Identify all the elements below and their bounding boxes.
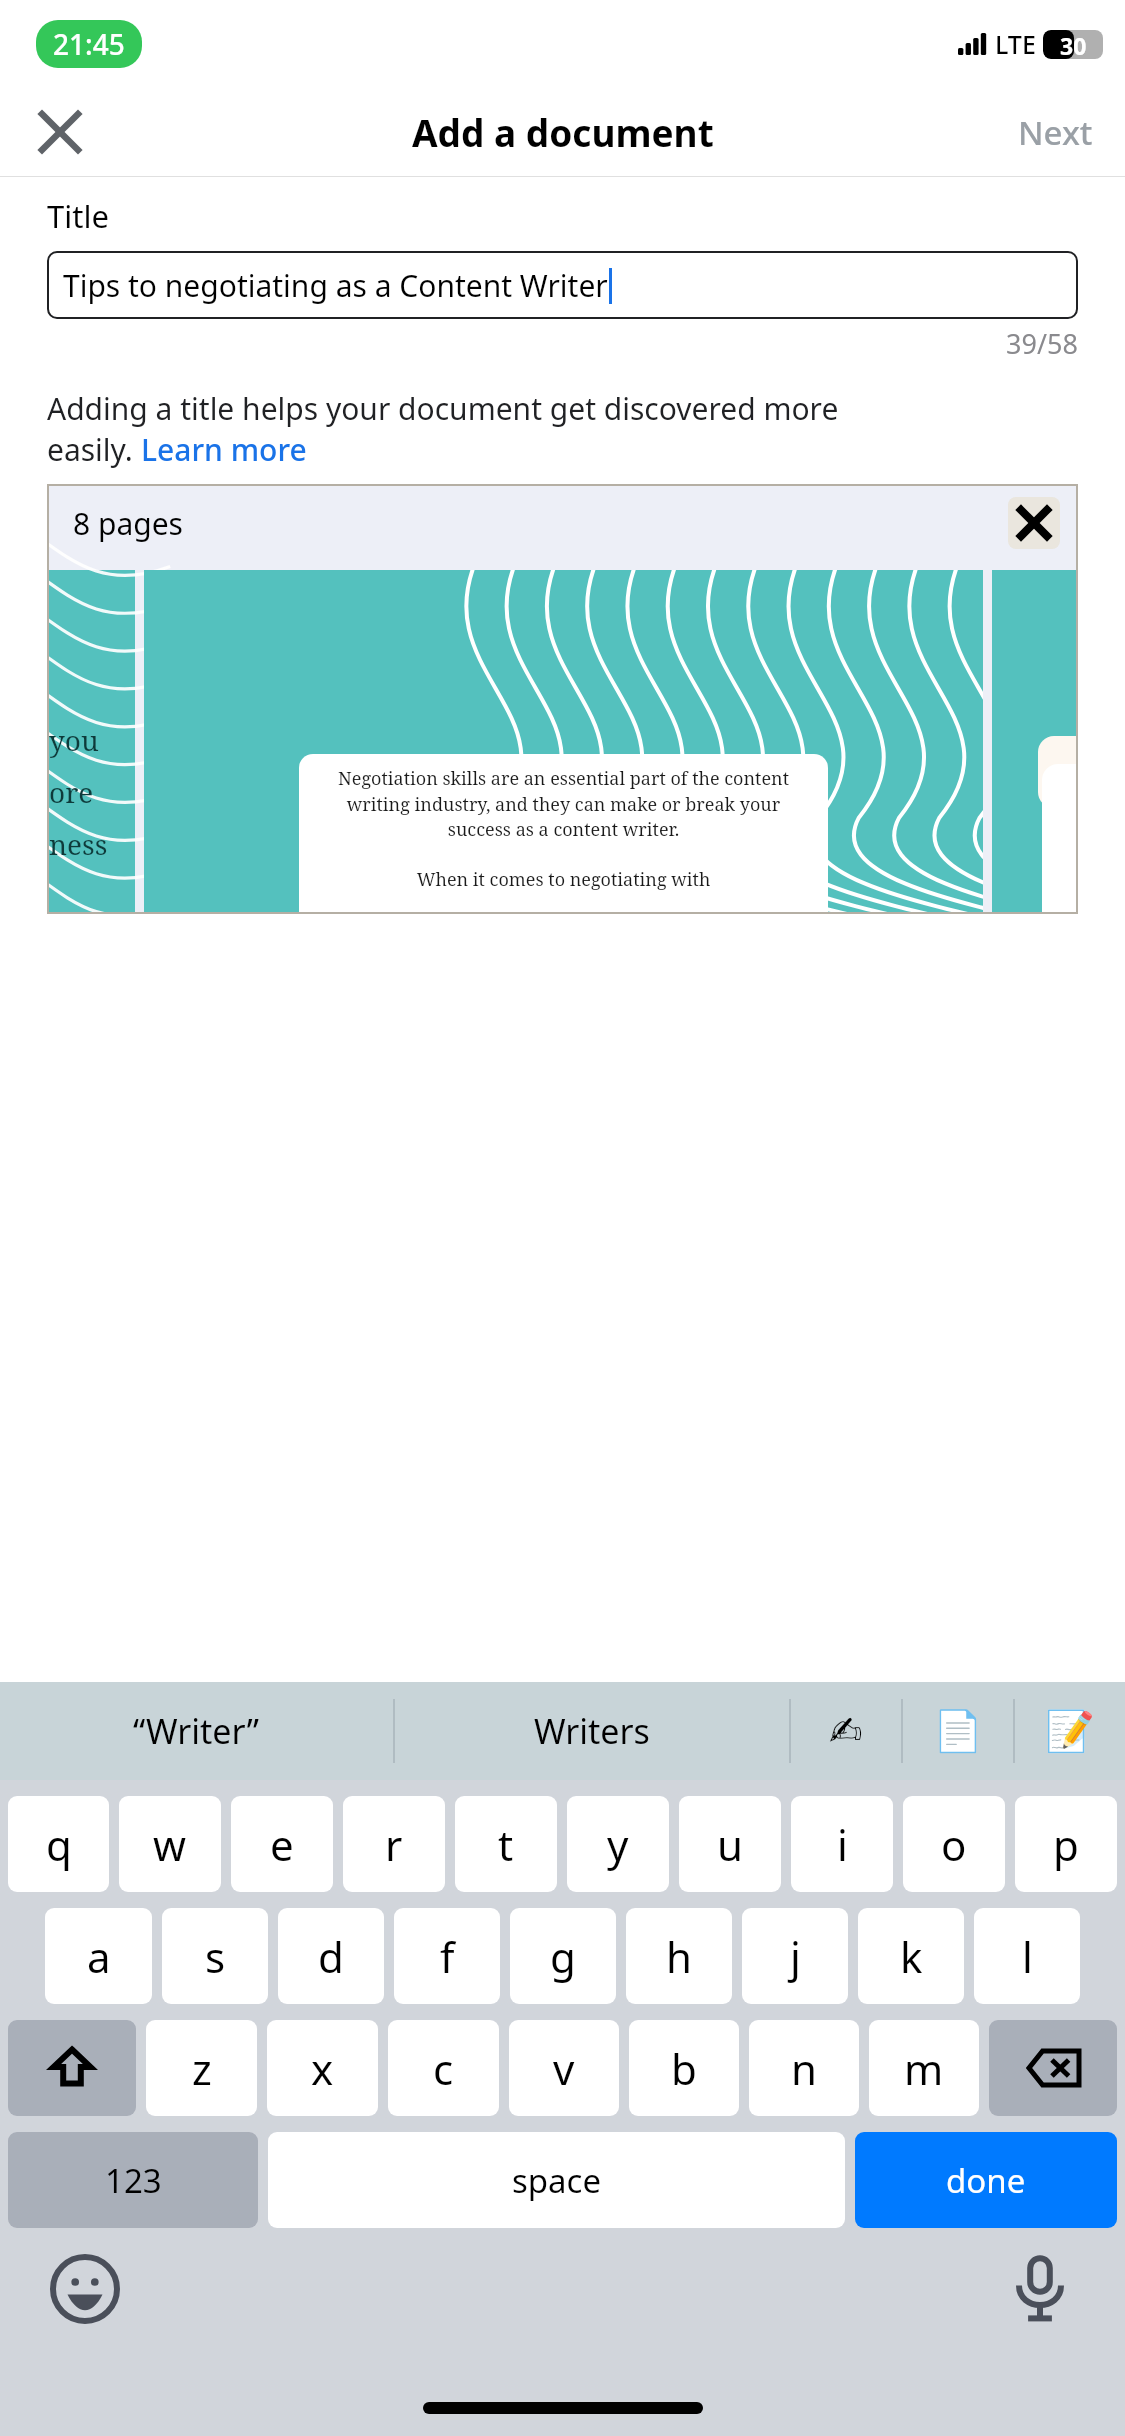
staticText: v <box>553 2040 575 2097</box>
staticText: ness <box>49 825 108 863</box>
button[interactable]: p <box>1015 1796 1117 1892</box>
staticText: h <box>666 1928 692 1985</box>
staticText: 21:45 <box>53 25 125 63</box>
staticText: k <box>900 1928 923 1985</box>
staticText: ✍️ <box>829 1708 863 1755</box>
staticText: s <box>205 1928 226 1985</box>
button[interactable]: Learn more <box>141 429 307 470</box>
button[interactable]: j <box>742 1908 848 2004</box>
button[interactable]: z <box>146 2020 257 2116</box>
button[interactable]: Page <box>903 1682 1013 1780</box>
staticText: Next <box>1018 110 1093 155</box>
staticText: t <box>498 1816 514 1873</box>
button[interactable]: h <box>626 1908 732 2004</box>
button[interactable]: Close <box>24 96 96 168</box>
staticText: a <box>87 1928 111 1985</box>
staticText: x <box>311 2040 334 2097</box>
staticText: 8 pages <box>73 503 183 544</box>
button[interactable]: r <box>343 1796 445 1892</box>
staticText: ore <box>49 773 94 811</box>
staticText: 📝 <box>1045 1708 1095 1755</box>
staticText: “Writer” <box>133 1708 260 1754</box>
button[interactable]: k <box>858 1908 964 2004</box>
button[interactable]: w <box>119 1796 221 1892</box>
button[interactable]: a <box>45 1908 152 2004</box>
staticText: 123 <box>105 2158 162 2203</box>
button[interactable]: x <box>267 2020 378 2116</box>
staticText: space <box>512 2158 602 2203</box>
staticText: easily. <box>47 429 141 470</box>
button[interactable]: “Writer” <box>0 1682 393 1780</box>
button[interactable]: Writing hand <box>791 1682 901 1780</box>
staticText: Add a document <box>412 107 714 157</box>
staticText: r <box>385 1816 403 1873</box>
button[interactable]: Memo <box>1015 1682 1125 1780</box>
staticText: Adding a title helps your document get d… <box>47 388 839 429</box>
button[interactable]: v <box>509 2020 619 2116</box>
staticText: c <box>433 2040 454 2097</box>
button[interactable]: m <box>869 2020 979 2116</box>
staticText: f <box>440 1928 455 1985</box>
staticText: Negotiation skills are an essential part… <box>313 766 814 891</box>
staticText: 39/58 <box>1006 325 1078 362</box>
staticText: g <box>550 1928 576 1985</box>
button[interactable]: Emoji <box>50 2254 120 2324</box>
button[interactable]: Backspace <box>989 2020 1117 2116</box>
button[interactable]: q <box>8 1796 109 1892</box>
staticText: z <box>192 2040 212 2097</box>
button[interactable]: t <box>455 1796 557 1892</box>
staticText: b <box>671 2040 697 2097</box>
staticText: d <box>318 1928 344 1985</box>
button[interactable]: d <box>278 1908 384 2004</box>
staticText: u <box>717 1816 743 1873</box>
staticText: Learn more <box>141 429 307 470</box>
button[interactable]: Tips to negotiating as a Content Writer <box>47 251 1078 319</box>
button[interactable]: c <box>388 2020 499 2116</box>
staticText: e <box>270 1816 294 1873</box>
button[interactable]: done <box>855 2132 1117 2228</box>
button[interactable]: Dictation <box>1005 2254 1075 2324</box>
staticText: 30 <box>1060 30 1087 59</box>
staticText: Writers <box>534 1708 650 1754</box>
button[interactable]: y <box>567 1796 669 1892</box>
button[interactable]: s <box>162 1908 268 2004</box>
staticText: o <box>941 1816 967 1873</box>
button[interactable]: Writers <box>395 1682 789 1780</box>
button[interactable]: Next <box>1006 100 1105 165</box>
button[interactable]: Shift <box>8 2020 136 2116</box>
button[interactable]: b <box>629 2020 739 2116</box>
staticText: p <box>1053 1816 1079 1873</box>
button[interactable]: n <box>749 2020 859 2116</box>
staticText: l <box>1022 1928 1033 1985</box>
button[interactable]: Close preview <box>1008 497 1060 549</box>
staticText: y <box>607 1816 629 1873</box>
button[interactable]: 123 <box>8 2132 258 2228</box>
button[interactable]: e <box>231 1796 333 1892</box>
staticText: done <box>946 2158 1026 2203</box>
staticText: Title <box>47 195 109 237</box>
staticText: m <box>904 2040 944 2097</box>
staticText: j <box>790 1928 801 1985</box>
button[interactable]: u <box>679 1796 781 1892</box>
button[interactable]: space <box>268 2132 845 2228</box>
button[interactable]: i <box>791 1796 893 1892</box>
staticText: i <box>837 1816 848 1873</box>
button[interactable]: o <box>903 1796 1005 1892</box>
staticText: n <box>791 2040 817 2097</box>
staticText: q <box>46 1816 72 1873</box>
staticText: you <box>49 721 99 759</box>
button[interactable]: f <box>394 1908 500 2004</box>
staticText: w <box>153 1816 187 1873</box>
staticText: LTE <box>995 27 1036 61</box>
staticText: 📄 <box>933 1708 983 1755</box>
button[interactable]: l <box>974 1908 1080 2004</box>
staticText: Tips to negotiating as a Content Writer <box>63 265 608 306</box>
button[interactable]: g <box>510 1908 616 2004</box>
